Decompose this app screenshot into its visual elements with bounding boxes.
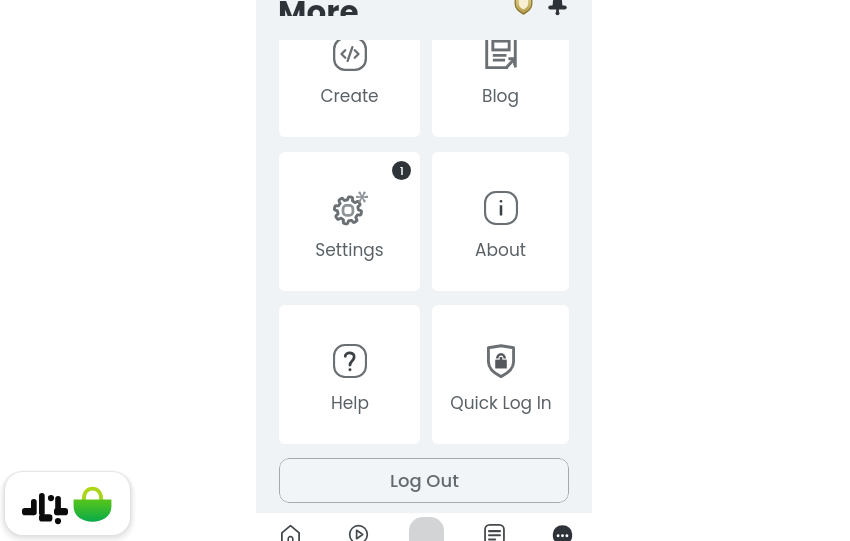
staticText: Create [320, 84, 379, 108]
staticText: Quick Log In [450, 391, 552, 415]
button[interactable]: Notifications [546, 0, 569, 17]
button[interactable]: Settings [279, 152, 420, 291]
staticText: More [278, 0, 359, 16]
staticText: Log Out [390, 468, 459, 493]
button[interactable]: Bazaar [5, 472, 130, 535]
staticText: Settings [315, 238, 384, 262]
staticText: Blog [482, 84, 519, 108]
button[interactable]: Documents [474, 513, 515, 541]
button[interactable]: Create [279, 40, 420, 137]
button[interactable]: More [542, 513, 583, 541]
button[interactable]: Help [279, 305, 420, 444]
button[interactable]: Videos [338, 513, 379, 541]
button[interactable]: Blog [432, 40, 569, 137]
button[interactable]: Home [270, 513, 311, 541]
button[interactable]: Premium badge [512, 0, 535, 15]
staticText: Help [331, 391, 369, 415]
staticText: 1 [400, 163, 404, 178]
staticText: About [475, 238, 526, 262]
button[interactable]: Quick Log In [432, 305, 569, 444]
button[interactable]: Log Out [279, 458, 569, 503]
button[interactable]: Scan [409, 517, 444, 541]
button[interactable]: About [432, 152, 569, 291]
